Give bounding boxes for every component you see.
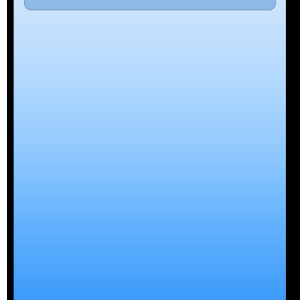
button[interactable]: Top app bar (24, 0, 276, 10)
